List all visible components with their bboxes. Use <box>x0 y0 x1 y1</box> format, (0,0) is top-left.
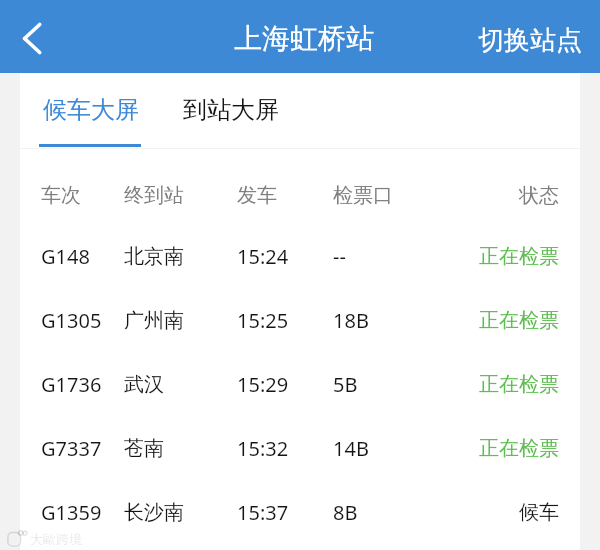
staticText: 15:29 <box>237 371 289 398</box>
staticText: 发车 <box>237 183 277 208</box>
button[interactable]: G148 <box>20 224 580 288</box>
button[interactable]: Back <box>0 0 58 73</box>
staticText: 状态 <box>519 183 559 208</box>
button[interactable]: G1359 <box>20 480 580 544</box>
staticText: 15:25 <box>237 307 289 334</box>
staticText: G1305 <box>41 307 102 334</box>
staticText: 切换站点 <box>478 24 582 57</box>
staticText: G1736 <box>41 371 102 398</box>
staticText: 15:32 <box>237 435 289 462</box>
staticText: 检票口 <box>333 183 393 208</box>
staticText: 5B <box>333 371 358 398</box>
staticText: -- <box>333 243 346 270</box>
staticText: 正在检票 <box>479 372 559 397</box>
staticText: 候车大屏 <box>43 95 139 125</box>
staticText: 车次 <box>41 183 81 208</box>
button[interactable]: 候车大屏 <box>20 73 161 148</box>
staticText: 15:37 <box>237 499 289 526</box>
staticText: 长沙南 <box>124 500 184 525</box>
staticText: G148 <box>41 243 90 270</box>
button[interactable]: 切换站点 <box>462 0 600 73</box>
staticText: 18B <box>333 307 369 334</box>
staticText: 到站大屏 <box>183 95 279 125</box>
staticText: 广州南 <box>124 308 184 333</box>
staticText: 正在检票 <box>479 244 559 269</box>
staticText: 苍南 <box>124 436 164 461</box>
staticText: G1359 <box>41 499 102 526</box>
button[interactable]: G1305 <box>20 288 580 352</box>
staticText: 武汉 <box>124 372 164 397</box>
staticText: 14B <box>333 435 369 462</box>
staticText: 终到站 <box>124 183 184 208</box>
staticText: 15:24 <box>237 243 289 270</box>
button[interactable]: G7337 <box>20 416 580 480</box>
staticText: G7337 <box>41 435 102 462</box>
staticText: 8B <box>333 499 358 526</box>
staticText: 北京南 <box>124 244 184 269</box>
button[interactable]: G1736 <box>20 352 580 416</box>
staticText: 候车 <box>519 500 559 525</box>
button[interactable]: 到站大屏 <box>161 73 301 148</box>
staticText: 大歐跨境 <box>30 531 82 547</box>
staticText: 正在检票 <box>479 308 559 333</box>
staticText: 上海虹桥站 <box>234 21 374 56</box>
staticText: 正在检票 <box>479 436 559 461</box>
